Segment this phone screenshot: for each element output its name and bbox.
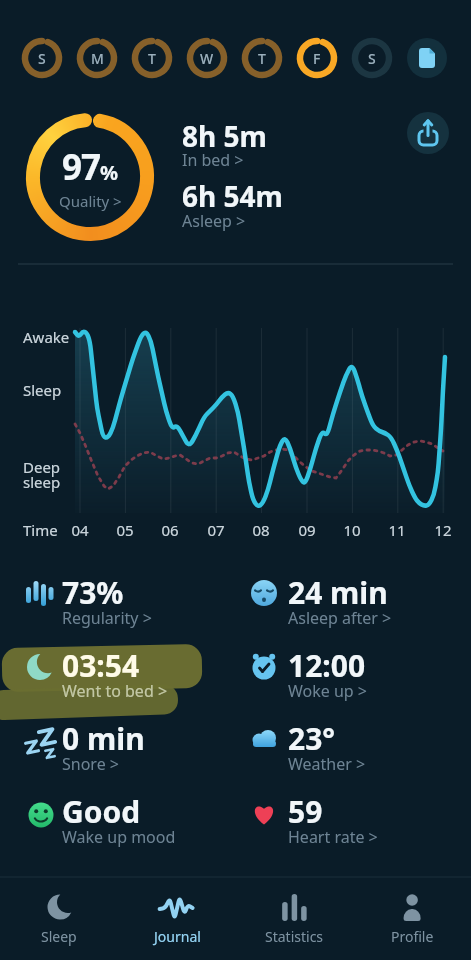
staticText: Deep sleep	[23, 457, 61, 492]
staticText: F	[313, 49, 321, 68]
staticText: Regularity >	[62, 607, 152, 629]
button[interactable]: M	[77, 38, 117, 78]
button[interactable]	[22, 572, 234, 640]
staticText: Good	[62, 791, 141, 832]
button[interactable]: Sleep	[14, 886, 104, 950]
button[interactable]: 97%	[26, 113, 154, 241]
button[interactable]: F	[297, 38, 337, 78]
staticText: S	[368, 49, 376, 68]
staticText: Journal	[154, 927, 201, 946]
staticText: 06	[153, 520, 187, 960]
staticText: W	[200, 49, 214, 68]
button[interactable]: Profile	[367, 886, 457, 950]
button[interactable]	[246, 791, 458, 859]
staticText: 04	[63, 520, 97, 960]
button[interactable]	[246, 572, 458, 640]
staticText: Time	[23, 520, 58, 540]
button[interactable]	[22, 645, 234, 713]
staticText: Weather >	[288, 753, 366, 775]
button[interactable]	[22, 791, 234, 859]
staticText: 59	[288, 791, 323, 832]
staticText: Snore >	[62, 753, 119, 775]
staticText: 12:00	[288, 645, 366, 686]
staticText: Went to bed >	[62, 680, 168, 702]
staticText: 12	[426, 520, 460, 960]
button[interactable]: W	[187, 38, 227, 78]
staticText: 05	[108, 520, 142, 960]
staticText: 08	[244, 520, 278, 960]
staticText: 23°	[288, 718, 336, 759]
staticText: Asleep >	[182, 210, 246, 232]
staticText: Quality >	[59, 191, 122, 211]
staticText: 6h 54m	[182, 177, 283, 215]
button[interactable]	[246, 718, 458, 786]
button[interactable]: S	[22, 38, 62, 78]
staticText: Asleep after >	[288, 607, 392, 629]
staticText: 97%	[62, 143, 119, 191]
button[interactable]	[246, 645, 458, 713]
button[interactable]	[182, 175, 312, 233]
staticText: Woke up >	[288, 680, 368, 702]
staticText: Statistics	[265, 927, 324, 946]
staticText: In bed >	[182, 149, 244, 171]
button[interactable]	[22, 718, 234, 786]
staticText: Sleep	[41, 927, 77, 946]
staticText: Awake	[23, 327, 70, 347]
staticText: 10	[335, 520, 369, 960]
staticText: 07	[199, 520, 233, 960]
staticText: 24 min	[288, 572, 388, 613]
button[interactable]: S	[352, 38, 392, 78]
button[interactable]: Journal	[132, 886, 222, 950]
button[interactable]: T	[132, 38, 172, 78]
staticText: T	[258, 49, 266, 68]
button[interactable]: T	[242, 38, 282, 78]
button[interactable]	[407, 38, 447, 78]
staticText: S	[38, 49, 46, 68]
staticText: T	[148, 49, 156, 68]
staticText: 8h 5m	[182, 117, 267, 155]
staticText: M	[91, 49, 104, 68]
button[interactable]: Statistics	[249, 886, 339, 950]
button[interactable]	[407, 112, 449, 154]
button[interactable]	[182, 115, 312, 173]
staticText: Profile	[391, 927, 434, 946]
staticText: 03:54	[62, 645, 140, 686]
staticText: 11	[380, 520, 414, 960]
staticText: 73%	[62, 572, 124, 613]
staticText: 09	[290, 520, 324, 960]
staticText: 0 min	[62, 718, 145, 759]
staticText: Wake up mood	[62, 826, 176, 848]
staticText: Heart rate >	[288, 826, 378, 848]
staticText: Sleep	[23, 380, 62, 400]
